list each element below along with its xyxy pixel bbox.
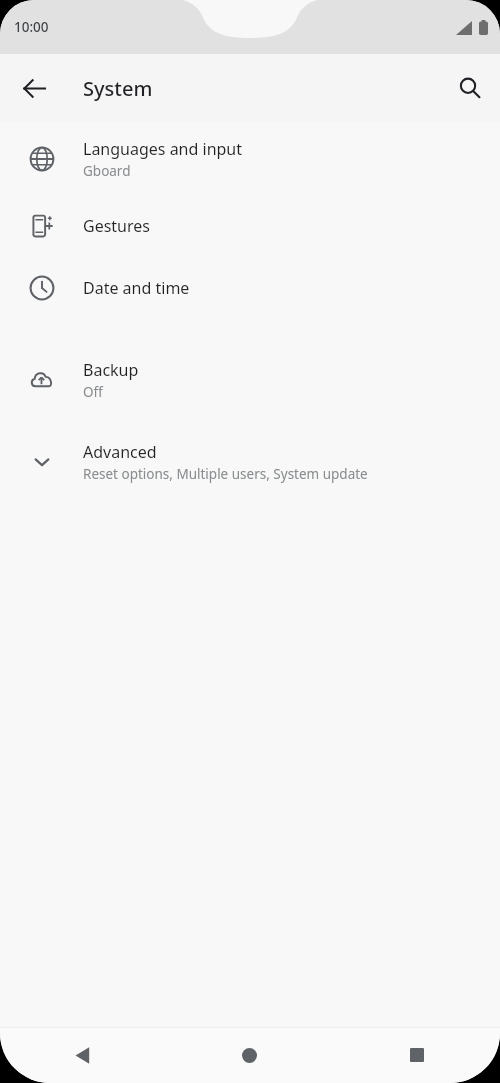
button[interactable]: Advanced	[0, 431, 500, 493]
button[interactable]: Recent apps	[333, 1027, 500, 1083]
button[interactable]: Home	[166, 1027, 333, 1083]
staticText: Gboard	[83, 162, 131, 180]
staticText: 10:00	[14, 18, 49, 36]
button[interactable]: Back	[0, 1027, 166, 1083]
button[interactable]: Gestures	[0, 195, 500, 257]
staticText: System	[83, 75, 153, 102]
staticText: Advanced	[83, 441, 157, 463]
button[interactable]: Backup	[0, 349, 500, 410]
button[interactable]: Search	[447, 65, 493, 111]
staticText: Date and time	[83, 277, 190, 299]
button[interactable]: Languages and input	[0, 122, 500, 195]
button[interactable]: Date and time	[0, 257, 500, 319]
staticText: Reset options, Multiple users, System up…	[83, 465, 368, 483]
staticText: Backup	[83, 359, 139, 381]
staticText: Gestures	[83, 215, 150, 237]
button[interactable]: Back	[12, 66, 56, 110]
staticText: Off	[83, 383, 103, 401]
staticText: Languages and input	[83, 138, 243, 160]
